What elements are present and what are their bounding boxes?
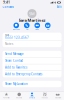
staticText: (555) 123-4567 [5, 36, 29, 39]
button[interactable]: Share Contact [2, 57, 61, 64]
button[interactable]: video [32, 22, 42, 31]
button[interactable]: Edit [57, 5, 62, 9]
staticText: Share Contact [5, 59, 23, 62]
button[interactable]: Add to Favorites [2, 64, 61, 71]
staticText: Notes [5, 42, 13, 46]
button[interactable]: Notes [2, 41, 61, 47]
staticText: Send Message [5, 52, 24, 56]
staticText: call [26, 29, 28, 30]
staticText: mail [47, 29, 49, 30]
staticText: 9:41 [3, 1, 10, 4]
staticText: Contacts [29, 97, 35, 99]
button[interactable]: Contacts [26, 92, 38, 100]
button[interactable]: Send Message [2, 51, 61, 57]
staticText: mobile [5, 34, 9, 36]
staticText: Add to Favorites [5, 66, 27, 69]
button[interactable]: Share My Location [2, 81, 61, 87]
staticText: Recents [16, 97, 22, 99]
button[interactable]: Recents [13, 92, 26, 100]
button[interactable]: message [11, 22, 21, 31]
staticText: Keypad [42, 97, 48, 99]
staticText: video [35, 29, 39, 30]
staticText: Edit [57, 5, 62, 9]
staticText: Favorites [3, 97, 10, 99]
button[interactable]: Voicemail [51, 92, 64, 100]
button[interactable]: Favorites [0, 92, 13, 100]
staticText: Add to Emergency Contacts [5, 72, 42, 76]
staticText: SM [29, 11, 35, 16]
staticText: Sara Martinez [18, 17, 45, 23]
staticText: Share My Location [5, 82, 28, 86]
staticText: Contacts [2, 5, 13, 9]
button[interactable]: Contacts [2, 5, 13, 9]
staticText: message [13, 29, 20, 30]
button[interactable]: mobile [2, 33, 61, 41]
button[interactable]: call [22, 22, 32, 31]
button[interactable]: mail [43, 22, 53, 31]
button[interactable]: Keypad [38, 92, 51, 100]
button[interactable]: Add to Emergency Contacts [2, 71, 61, 77]
staticText: Voicemail [55, 97, 61, 99]
